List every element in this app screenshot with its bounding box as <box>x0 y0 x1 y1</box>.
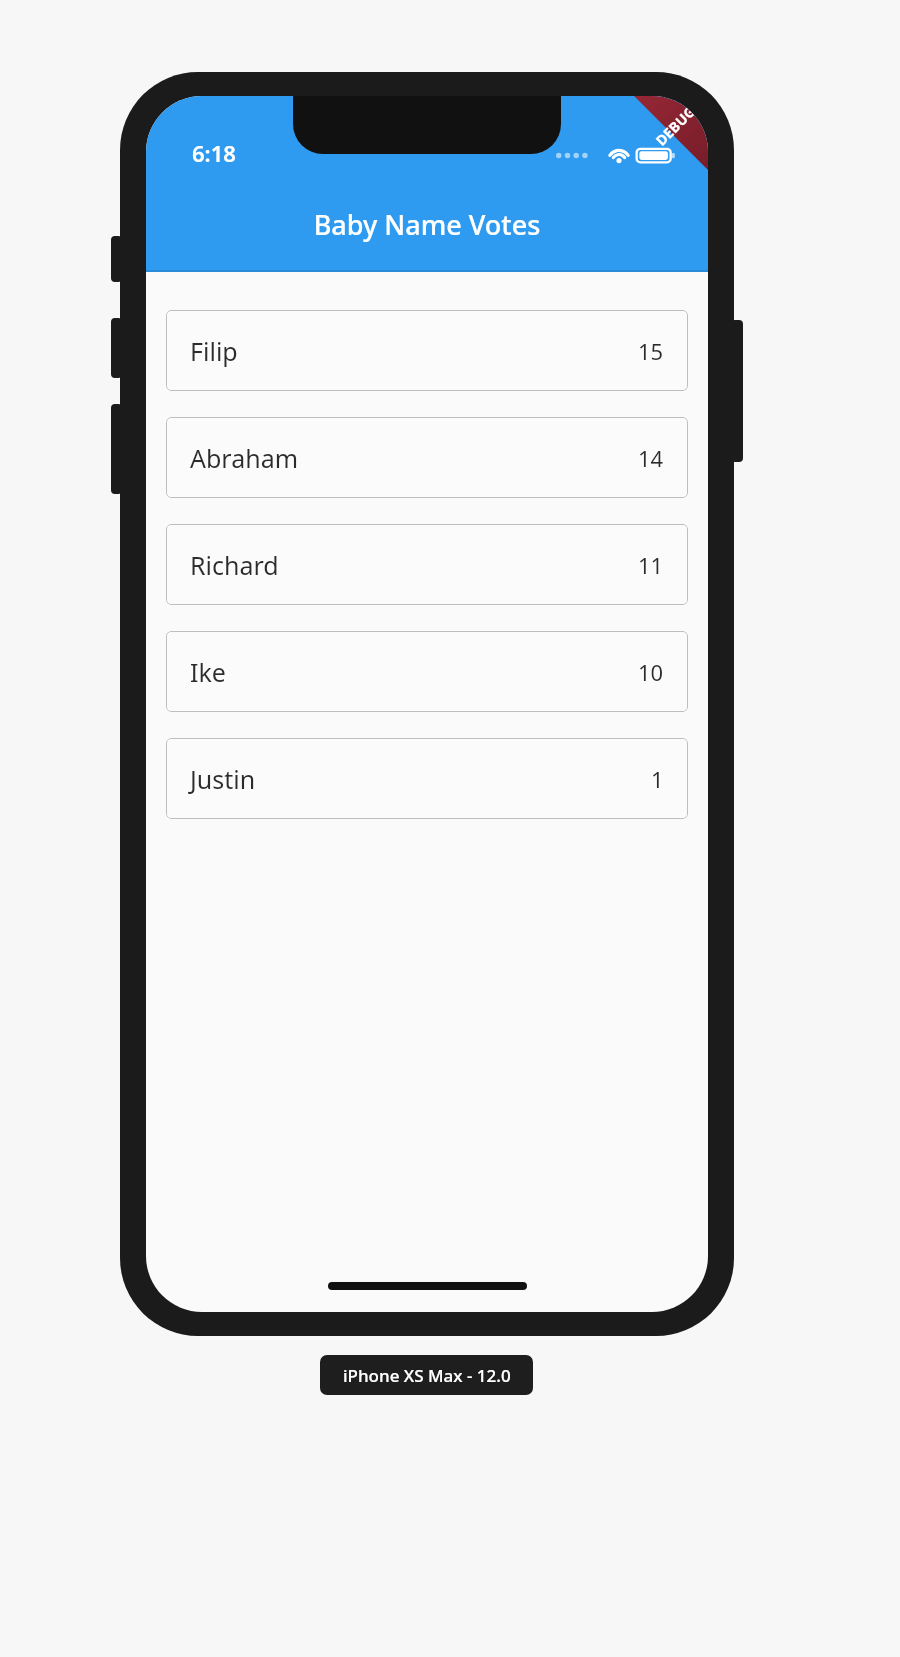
staticText: 6:18 <box>192 138 236 168</box>
staticText: DEBUG <box>651 101 700 150</box>
staticText: Baby Name Votes <box>146 206 708 243</box>
button[interactable]: Filip <box>166 310 688 391</box>
staticText: Abraham <box>190 441 299 475</box>
button[interactable]: Ike <box>166 631 688 712</box>
staticText: 10 <box>638 657 664 687</box>
button[interactable]: Abraham <box>166 417 688 498</box>
button[interactable]: Richard <box>166 524 688 605</box>
staticText: Ike <box>190 655 226 689</box>
staticText: 11 <box>638 550 664 580</box>
staticText: Filip <box>190 334 238 368</box>
staticText: Richard <box>190 548 279 582</box>
staticText: 15 <box>638 336 664 366</box>
staticText: 14 <box>638 443 664 473</box>
button[interactable]: Justin <box>166 738 688 819</box>
staticText: Justin <box>190 762 256 796</box>
other: Debug banner <box>596 96 708 208</box>
staticText: iPhone XS Max - 12.0 <box>343 1364 511 1387</box>
staticText: 1 <box>651 764 664 794</box>
